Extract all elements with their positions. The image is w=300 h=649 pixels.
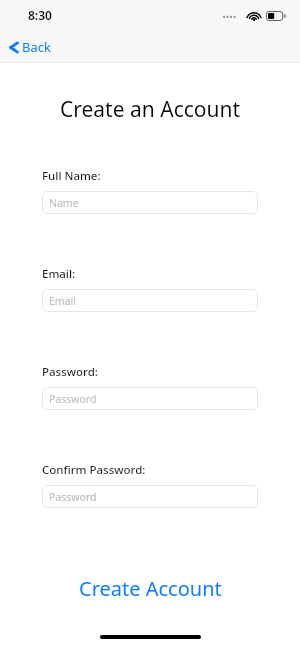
staticText: Confirm Password: [42, 462, 146, 478]
button[interactable]: Name [42, 191, 258, 214]
staticText: Create an Account [0, 95, 300, 124]
staticText: Password [49, 490, 97, 504]
staticText: Password [49, 392, 97, 406]
button[interactable]: Password [42, 485, 258, 508]
button[interactable]: Password [42, 387, 258, 410]
button[interactable]: Back [0, 34, 61, 60]
button[interactable]: Create Account [65, 569, 236, 608]
staticText: Email [49, 294, 76, 308]
staticText: Create Account [79, 575, 222, 602]
staticText: Name [49, 196, 79, 210]
staticText: Full Name: [42, 168, 101, 184]
staticText: 8:30 [28, 7, 52, 23]
staticText: Email: [42, 266, 76, 282]
staticText: Back [22, 38, 51, 56]
button[interactable]: Email [42, 289, 258, 312]
staticText: Password: [42, 364, 98, 380]
